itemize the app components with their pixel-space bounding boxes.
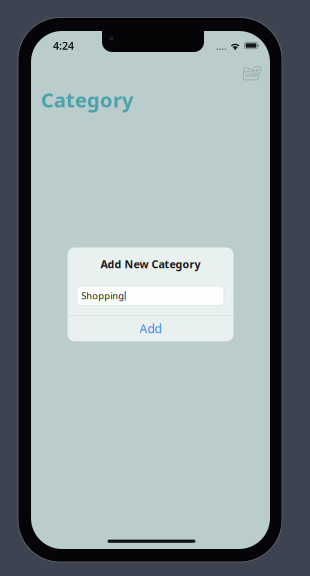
button[interactable]: Add Category [235,62,266,84]
staticText: 4:24 [53,38,74,53]
button[interactable]: Add [67,316,233,341]
staticText: Category [41,86,133,113]
staticText: Add New Category [100,257,200,271]
staticText: Shopping [81,289,124,302]
staticText: Add [139,321,161,336]
